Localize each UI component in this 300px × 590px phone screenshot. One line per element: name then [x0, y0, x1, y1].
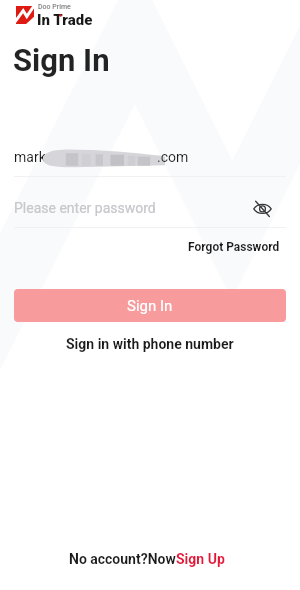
staticText: In Trade — [37, 11, 93, 29]
staticText: .com — [157, 149, 189, 165]
button[interactable]: Forgot Password — [184, 236, 284, 258]
staticText: No account?Now — [69, 551, 176, 567]
staticText: Sign In — [127, 297, 173, 315]
button[interactable]: Sign in with phone number — [62, 333, 238, 355]
staticText: Doo Prime — [38, 3, 71, 11]
staticText: Sign In — [13, 42, 110, 78]
button[interactable]: Show password — [248, 194, 276, 222]
button[interactable]: Sign Up — [176, 551, 225, 567]
staticText: Please enter password — [14, 200, 156, 216]
staticText: mark — [14, 149, 46, 165]
button[interactable]: Sign In — [14, 289, 286, 322]
